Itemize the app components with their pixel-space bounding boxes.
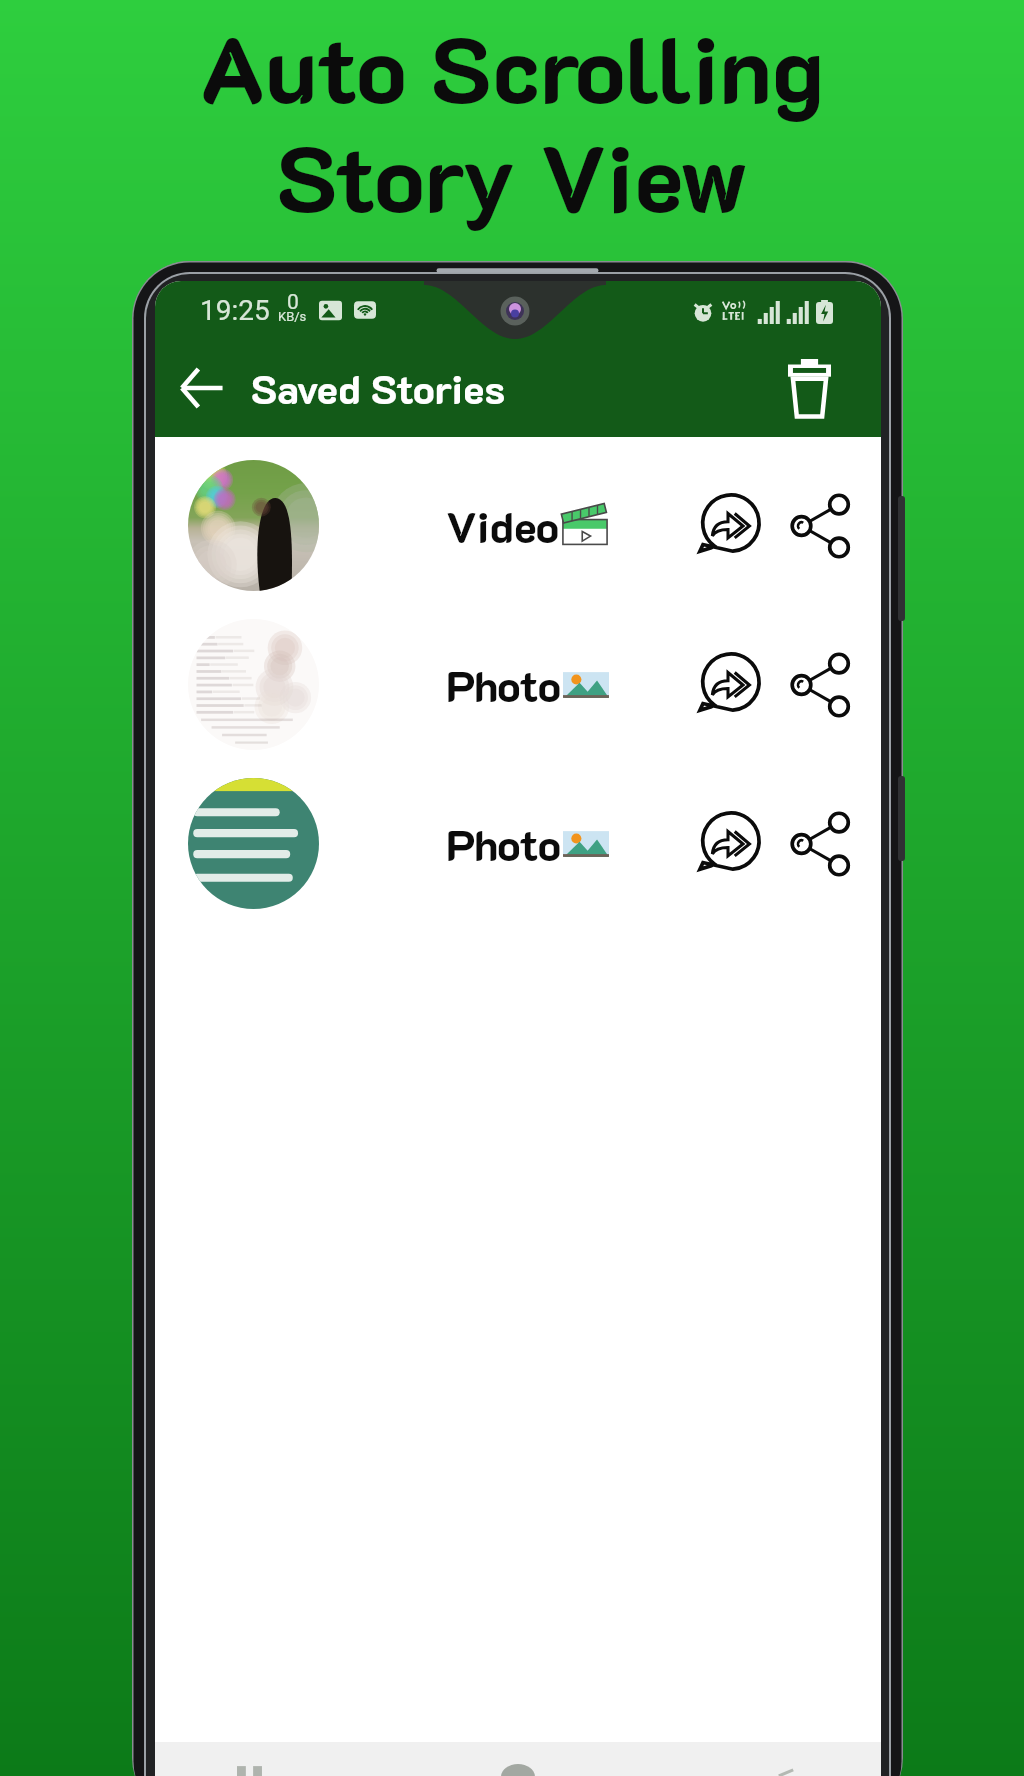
button[interactable]: Share <box>783 488 859 564</box>
button[interactable]: Video <box>155 446 881 605</box>
button[interactable]: Forward <box>689 646 767 724</box>
staticText: KB/s <box>278 309 307 324</box>
button[interactable]: Photo <box>155 605 881 764</box>
button[interactable]: Share <box>783 647 859 723</box>
button[interactable]: Delete <box>770 349 848 427</box>
button[interactable]: Share <box>783 806 859 882</box>
staticText: 19:25 <box>200 294 270 327</box>
button[interactable]: Home <box>483 1746 553 1776</box>
button[interactable]: Recents <box>215 1746 285 1776</box>
staticText: Saved Stories <box>251 362 505 414</box>
staticText: Auto Scrolling <box>200 6 824 127</box>
staticText: Video <box>446 498 560 554</box>
staticText: Photo <box>446 816 561 872</box>
button[interactable]: Forward <box>689 487 767 565</box>
button[interactable]: Back <box>167 354 235 422</box>
staticText: 0 <box>287 290 299 315</box>
button[interactable]: Back <box>751 1746 821 1776</box>
staticText: Photo <box>446 657 561 713</box>
button[interactable]: Photo <box>155 764 881 923</box>
staticText: Story View <box>276 115 749 236</box>
button[interactable]: Forward <box>689 805 767 883</box>
